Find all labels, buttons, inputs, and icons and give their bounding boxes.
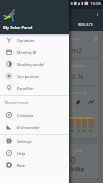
staticText: e energy (71, 90, 88, 95)
staticText: 3 % (71, 71, 84, 81)
button[interactable]: More options (95, 11, 99, 18)
staticText: PanelSim (17, 86, 34, 91)
staticText: RESULTS (78, 22, 93, 27)
staticText: Inclinometer (17, 125, 40, 130)
button[interactable]: Inclinometer (0, 121, 69, 133)
staticText: Monthly IR (17, 50, 37, 55)
staticText: My Solar Panel (3, 25, 33, 31)
staticText: Sun position (17, 74, 40, 79)
staticText: Measurement (5, 100, 29, 105)
button[interactable]: Compass (0, 109, 69, 121)
button[interactable]: Sun position (0, 70, 69, 82)
staticText: kWp (71, 165, 85, 173)
staticText: 0 (71, 155, 76, 166)
staticText: Settings (17, 139, 32, 144)
staticText: area (71, 36, 80, 41)
button[interactable]: Shading model (0, 58, 69, 70)
staticText: Rate (17, 163, 26, 168)
button[interactable]: Rate (0, 159, 69, 171)
staticText: Help (17, 151, 26, 156)
staticText: ty factor (71, 63, 87, 68)
button[interactable]: RESULTS (71, 19, 99, 30)
staticText: r yield (71, 148, 83, 153)
button[interactable]: Settings (0, 135, 69, 147)
button[interactable]: Monthly IR (0, 46, 69, 58)
staticText: m2 (71, 45, 83, 55)
staticText: Compass (17, 113, 34, 118)
staticText: 19:58 (90, 1, 101, 7)
button[interactable]: Optimizer (0, 34, 69, 46)
button[interactable]: Help (0, 147, 69, 159)
button[interactable]: PanelSim (0, 82, 69, 94)
staticText: Optimizer (17, 38, 35, 43)
staticText: Shading model (17, 62, 44, 67)
